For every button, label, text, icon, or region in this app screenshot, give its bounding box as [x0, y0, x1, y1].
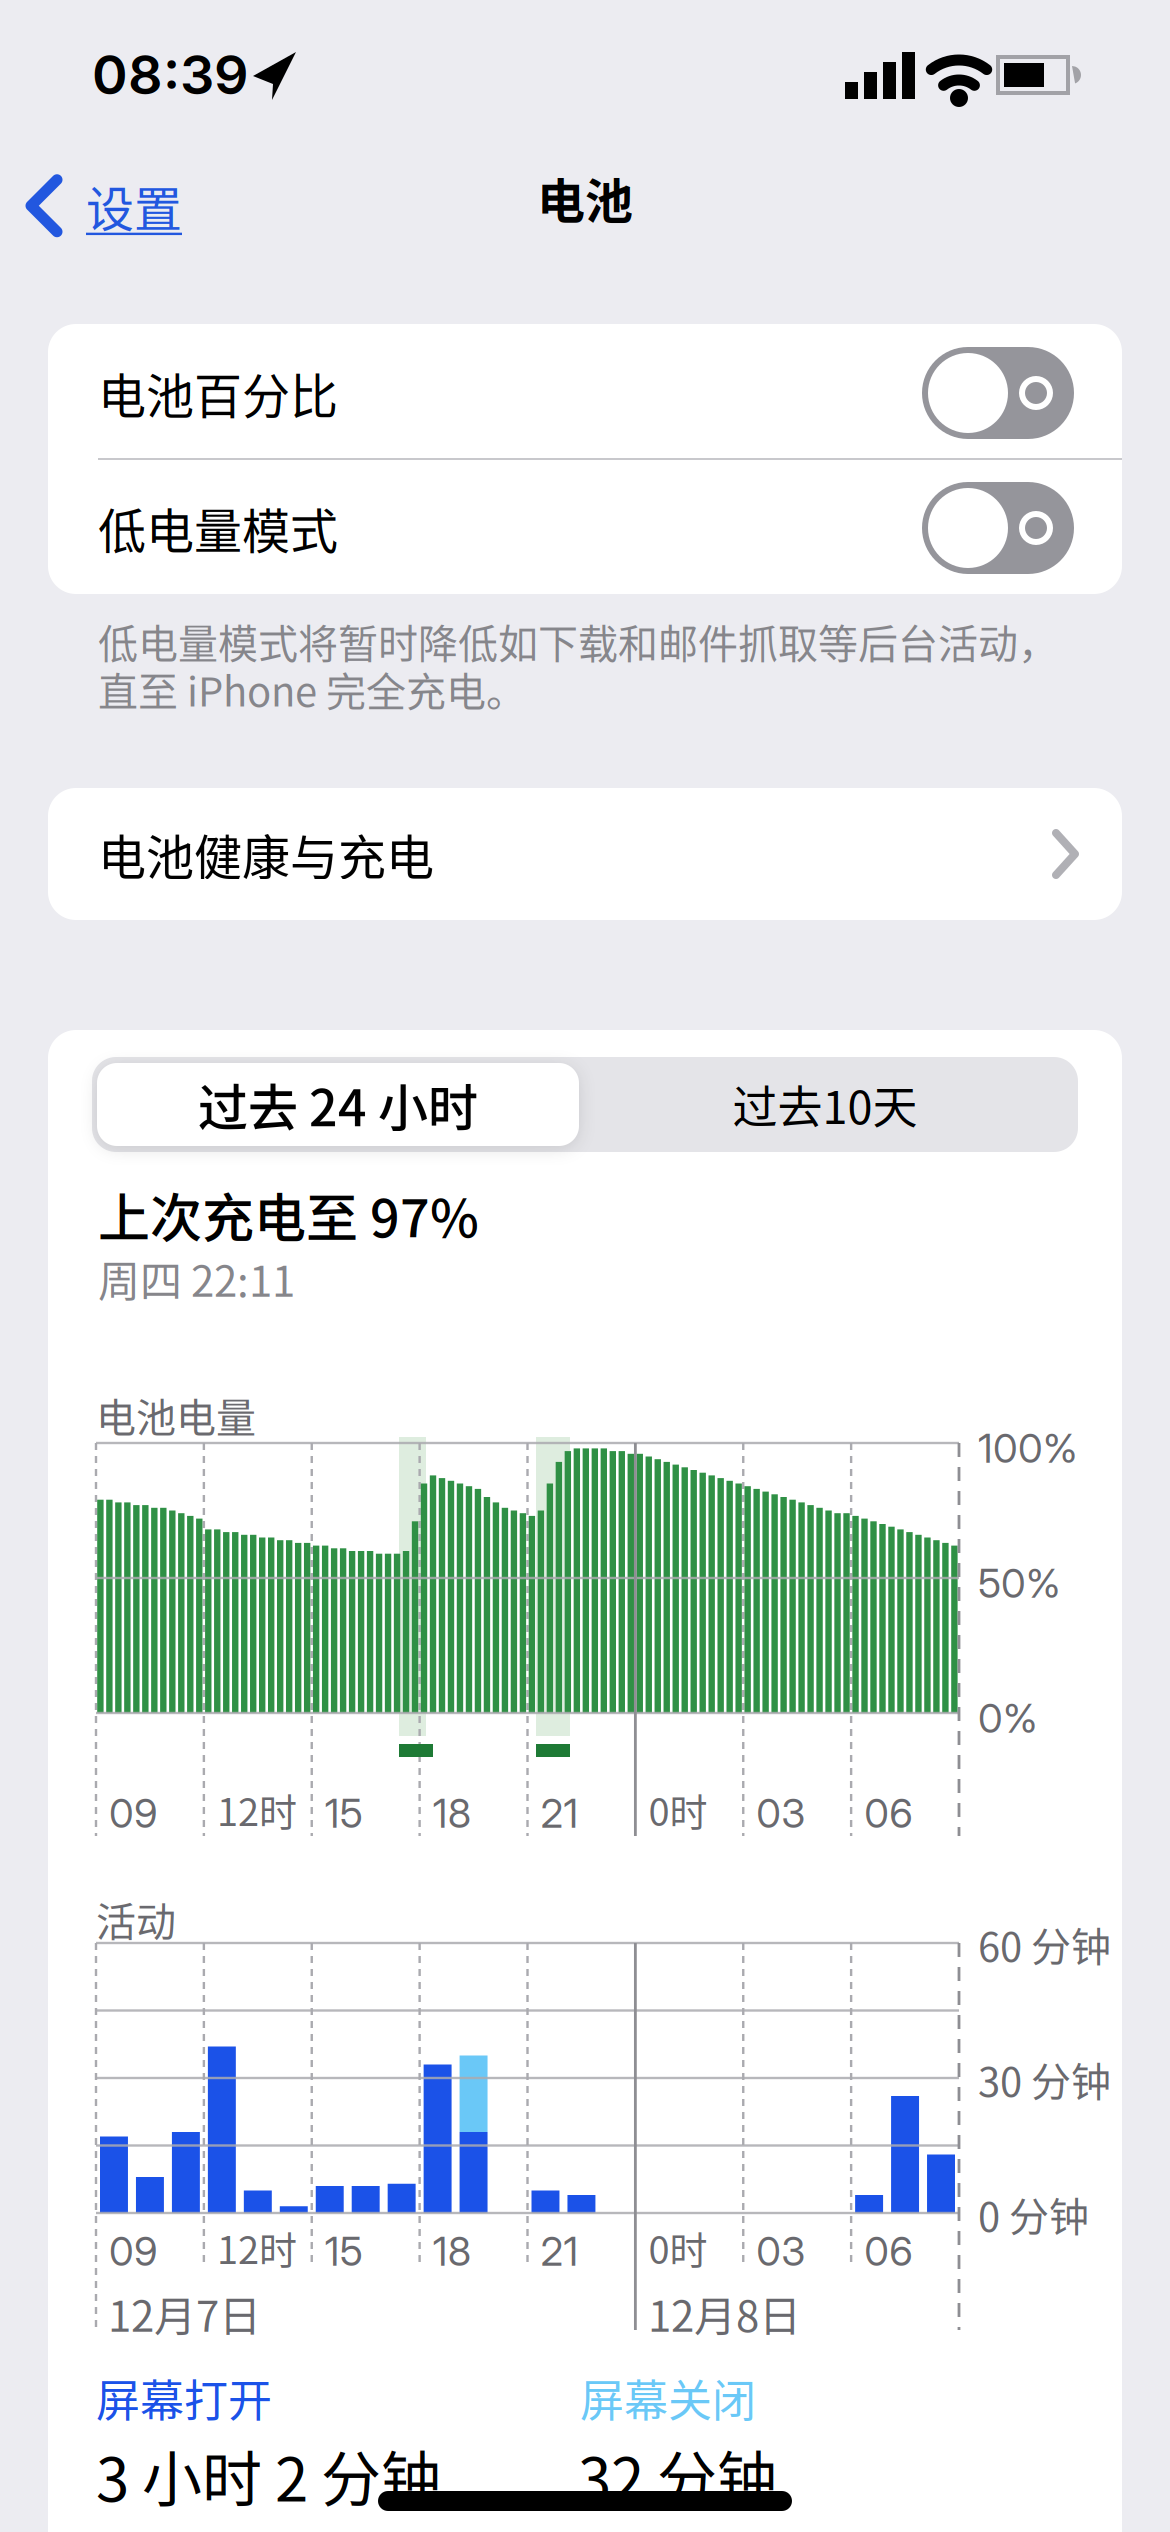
- staticText: 低电量模式将暂时降低如下载和邮件抓取等后台活动，: [98, 612, 1058, 670]
- staticText: 电池百分比: [98, 358, 338, 427]
- staticText: 0 分钟: [978, 2185, 1089, 2243]
- staticText: 0时: [648, 1782, 707, 1837]
- button[interactable]: 电池健康与充电: [48, 788, 1122, 920]
- staticText: 06: [864, 1789, 913, 1837]
- staticText: 过去10天: [732, 1072, 917, 1137]
- staticText: 21: [540, 2227, 578, 2275]
- staticText: 21: [540, 1789, 578, 1837]
- staticText: 屏幕打开: [96, 2366, 272, 2430]
- staticText: 屏幕关闭: [580, 2366, 756, 2430]
- staticText: 电池: [537, 163, 633, 232]
- staticText: 06: [864, 2227, 913, 2275]
- staticText: 18: [433, 1789, 471, 1837]
- staticText: 电池健康与充电: [98, 819, 434, 889]
- staticText: 设置: [86, 171, 182, 240]
- staticText: 03: [756, 1789, 805, 1837]
- staticText: 周四 22:11: [98, 1248, 295, 1309]
- staticText: 12月7日: [108, 2283, 261, 2344]
- staticText: 09: [109, 1789, 158, 1837]
- button[interactable]: 过去 24 小时: [97, 1063, 579, 1146]
- staticText: 15: [325, 1789, 363, 1837]
- button[interactable]: 低电量模式: [922, 482, 1074, 574]
- staticText: 12时: [217, 1782, 297, 1837]
- staticText: 0时: [648, 2220, 707, 2275]
- staticText: 上次充电至 97%: [98, 1177, 479, 1252]
- staticText: 低电量模式: [98, 493, 338, 562]
- button[interactable]: 过去10天: [585, 1063, 1065, 1146]
- staticText: 30 分钟: [978, 2050, 1111, 2108]
- staticText: 15: [325, 2227, 363, 2275]
- staticText: 03: [756, 2227, 805, 2275]
- staticText: 12月8日: [648, 2283, 801, 2344]
- staticText: 50%: [978, 1559, 1060, 1607]
- staticText: 0%: [978, 1694, 1037, 1742]
- staticText: 100%: [978, 1424, 1077, 1472]
- button[interactable]: 电池百分比: [922, 347, 1074, 439]
- button[interactable]: 设置: [26, 171, 182, 240]
- staticText: 18: [433, 2227, 471, 2275]
- staticText: 08:39: [92, 42, 249, 107]
- staticText: 直至 iPhone 完全充电。: [98, 660, 526, 718]
- staticText: 12时: [217, 2220, 297, 2275]
- staticText: 32 分钟: [578, 2432, 777, 2519]
- staticText: 过去 24 小时: [198, 1068, 478, 1141]
- staticText: 60 分钟: [978, 1915, 1111, 1973]
- staticText: 电池电量: [96, 1386, 256, 1444]
- staticText: 活动: [96, 1890, 176, 1948]
- staticText: 3 小时 2 分钟: [96, 2432, 441, 2519]
- staticText: 09: [109, 2227, 158, 2275]
